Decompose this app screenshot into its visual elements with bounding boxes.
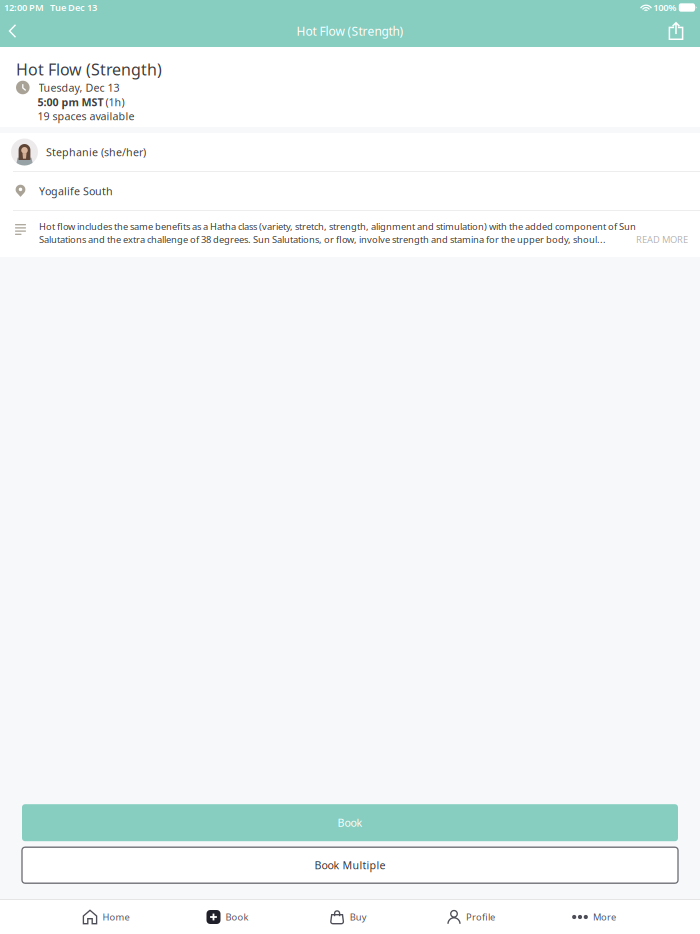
staticText: READ MORE	[636, 233, 688, 246]
staticText: 5:00 pm MST	[37, 95, 103, 109]
button[interactable]: Share	[657, 15, 695, 47]
staticText: Tuesday, Dec 13	[39, 80, 120, 95]
staticText: Tue Dec 13	[50, 1, 97, 14]
staticText: Profile	[466, 911, 495, 923]
staticText: Hot Flow (Strength)	[296, 23, 403, 39]
staticText: 12:00 PM	[4, 1, 44, 14]
staticText: Buy	[350, 911, 367, 923]
button[interactable]: Book Multiple	[22, 847, 678, 883]
button[interactable]: Back	[0, 15, 25, 47]
staticText: (1h)	[105, 95, 124, 109]
staticText: Book Multiple	[314, 858, 385, 872]
staticText: 19 spaces available	[37, 109, 134, 123]
button[interactable]: Home	[44, 900, 167, 934]
button[interactable]: Book	[22, 804, 678, 841]
staticText: Hot flow includes the same benefits as a…	[39, 220, 636, 233]
staticText: 100%	[653, 1, 676, 14]
staticText: More	[593, 911, 616, 923]
staticText: Salutations and the extra challenge of 3…	[39, 233, 606, 246]
button[interactable]: Profile	[409, 900, 532, 934]
staticText: Hot Flow (Strength)	[16, 59, 162, 80]
button[interactable]: More	[532, 900, 655, 934]
staticText: Home	[102, 911, 129, 923]
button[interactable]: Buy	[287, 900, 409, 934]
staticText: Book	[337, 816, 362, 830]
button[interactable]: Book	[167, 900, 287, 934]
staticText: Yogalife South	[39, 184, 113, 198]
staticText: Book	[225, 911, 248, 923]
staticText: Stephanie (she/her)	[46, 145, 146, 159]
